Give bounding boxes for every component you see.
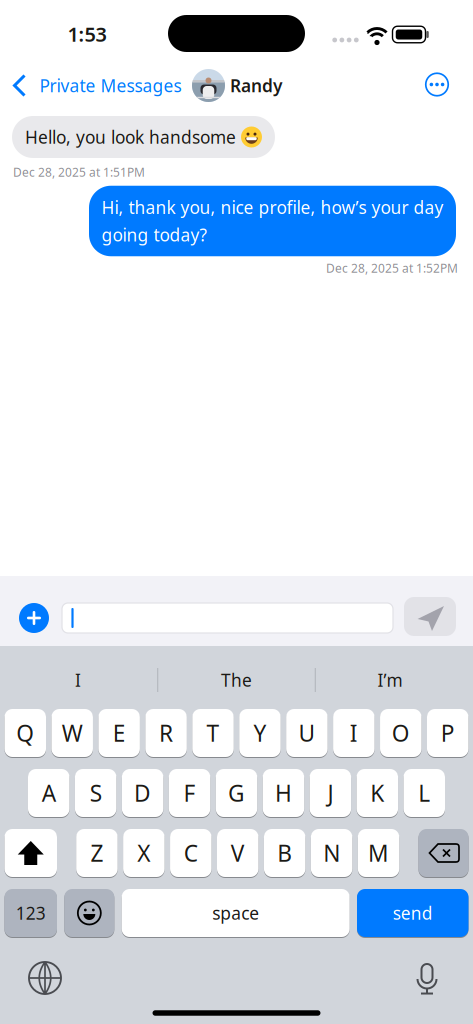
staticText: send bbox=[393, 901, 433, 924]
staticText: N bbox=[323, 838, 340, 868]
staticText: A bbox=[42, 778, 56, 808]
staticText: space bbox=[212, 901, 259, 924]
staticText: T bbox=[206, 718, 219, 748]
staticText: 1:53 bbox=[67, 21, 106, 47]
staticText: I bbox=[350, 718, 358, 748]
staticText: W bbox=[62, 718, 83, 748]
staticText: C bbox=[184, 838, 198, 868]
staticText: Y bbox=[253, 718, 266, 748]
staticText: U bbox=[298, 718, 315, 748]
staticText: P bbox=[441, 718, 455, 748]
staticText: Hi, thank you, nice profile, how’s your … bbox=[101, 196, 443, 219]
staticText: R bbox=[159, 718, 173, 748]
staticText: The bbox=[221, 668, 252, 691]
staticText: I’m bbox=[377, 668, 402, 691]
staticText: F bbox=[184, 778, 196, 808]
staticText: D bbox=[134, 778, 151, 808]
staticText: J bbox=[327, 778, 333, 808]
staticText: Q bbox=[16, 718, 34, 748]
staticText: K bbox=[370, 778, 384, 808]
staticText: V bbox=[231, 838, 245, 868]
staticText: Randy bbox=[230, 74, 282, 97]
staticText: Z bbox=[90, 838, 103, 868]
staticText: E bbox=[113, 718, 126, 748]
staticText: 123 bbox=[16, 901, 46, 924]
staticText: Dec 28, 2025 at 1:52PM bbox=[326, 260, 458, 276]
staticText: X bbox=[137, 838, 150, 868]
staticText: M bbox=[368, 838, 389, 868]
staticText: O bbox=[392, 718, 410, 748]
staticText: Hello, you look handsome bbox=[25, 125, 236, 148]
staticText: Private Messages bbox=[39, 74, 181, 97]
staticText: Dec 28, 2025 at 1:51PM bbox=[13, 164, 145, 180]
staticText: going today? bbox=[101, 223, 207, 246]
staticText: S bbox=[90, 778, 102, 808]
staticText: B bbox=[277, 838, 292, 868]
staticText: I bbox=[75, 668, 81, 691]
staticText: L bbox=[418, 778, 430, 808]
staticText: H bbox=[275, 778, 292, 808]
staticText: G bbox=[228, 778, 245, 808]
